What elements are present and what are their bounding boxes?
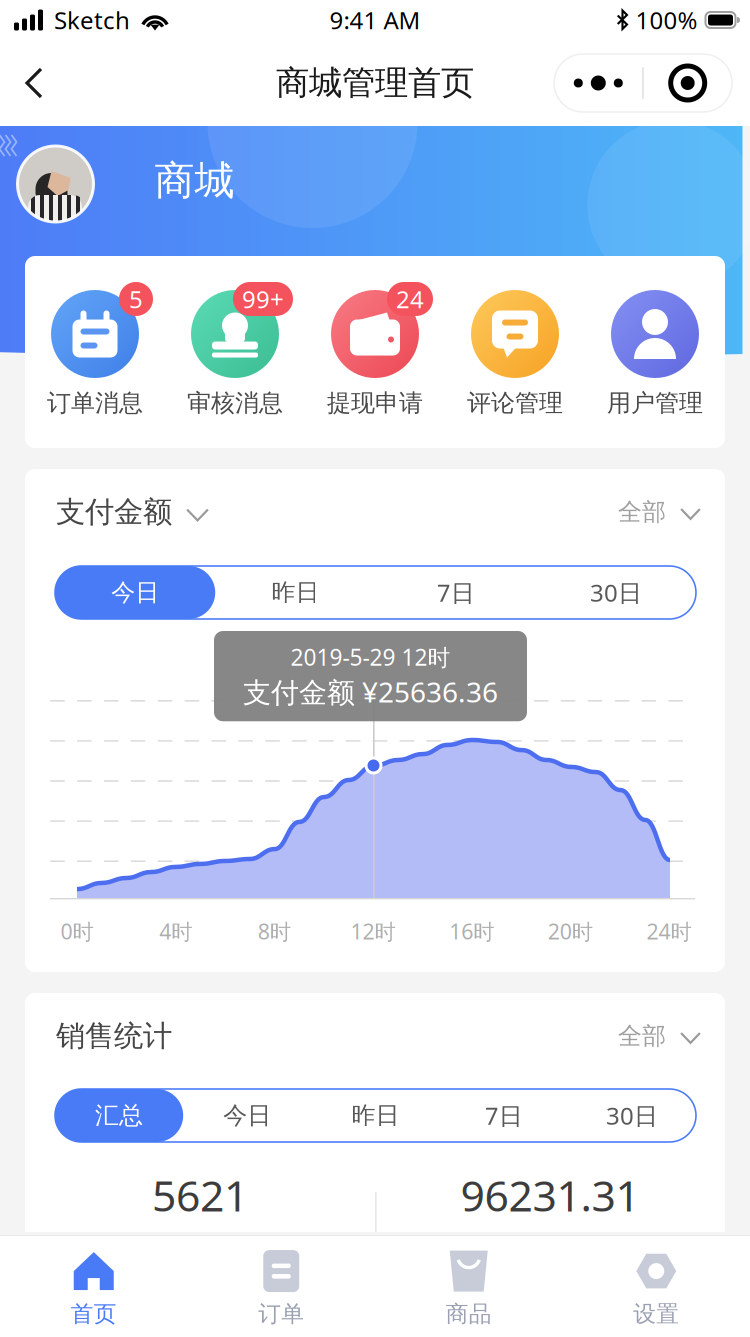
staticText: 20时 (548, 917, 593, 945)
button[interactable]: 用户管理 (585, 290, 725, 417)
button[interactable]: 首页 (0, 1250, 187, 1328)
staticText: 支付金额 (56, 494, 172, 530)
button[interactable]: 今日 (183, 1089, 311, 1142)
button[interactable]: 30日 (568, 1089, 696, 1142)
button[interactable]: 昨日 (311, 1089, 440, 1142)
staticText: 评论管理 (467, 388, 563, 418)
staticText: 30日 (606, 1100, 658, 1131)
button[interactable]: 胶囊菜单 (644, 56, 732, 110)
button[interactable]: 昨日 (215, 566, 375, 619)
staticText: 昨日 (271, 578, 319, 607)
staticText: 商城管理首页 (276, 62, 474, 103)
button[interactable]: 99+ (165, 290, 305, 417)
staticText: 商品 (446, 1300, 492, 1328)
staticText: 全部 (618, 497, 666, 527)
staticText: 用户管理 (607, 388, 703, 418)
button[interactable]: 7日 (375, 566, 536, 619)
staticText: 8时 (258, 917, 291, 945)
staticText: 100% (635, 4, 697, 36)
button[interactable]: 24 (305, 290, 445, 417)
staticText: 24 (396, 283, 424, 315)
staticText: 30日 (590, 577, 642, 608)
button[interactable]: 7日 (440, 1089, 568, 1142)
staticText: 9:41 AM (329, 4, 420, 36)
staticText: 汇总 (95, 1101, 143, 1130)
staticText: 2019-5-29 12时 (290, 642, 450, 672)
staticText: 支付金额 ¥25636.36 (243, 673, 498, 710)
staticText: 5621 (152, 1167, 248, 1223)
staticText: 今日 (111, 578, 159, 607)
staticText: 设置 (633, 1300, 679, 1328)
staticText: 96231.31 (460, 1167, 639, 1223)
button[interactable]: 设置 (562, 1250, 750, 1328)
button[interactable]: 汇总 (55, 1089, 183, 1142)
staticText: 24时 (646, 917, 691, 945)
staticText: 12时 (350, 917, 395, 945)
staticText: 5 (129, 283, 143, 315)
button[interactable]: 更多 (554, 56, 642, 110)
staticText: 订单消息 (47, 388, 143, 418)
button[interactable]: 30日 (536, 566, 696, 619)
staticText: 7日 (485, 1100, 523, 1131)
button[interactable]: 5 (25, 290, 165, 417)
staticText: 99+ (242, 283, 284, 315)
button[interactable]: 订单 (187, 1250, 375, 1328)
staticText: Sketch (54, 4, 130, 36)
button[interactable]: 评论管理 (445, 290, 585, 417)
button[interactable]: 商品 (375, 1250, 562, 1328)
button[interactable]: 返回 (0, 49, 68, 117)
staticText: 商城 (154, 156, 234, 205)
staticText: 审核消息 (187, 388, 283, 418)
staticText: 全部 (618, 1021, 666, 1051)
button[interactable]: 今日 (55, 566, 215, 619)
staticText: 0时 (60, 917, 93, 945)
staticText: 提现申请 (327, 388, 423, 418)
staticText: 7日 (437, 577, 475, 608)
staticText: 昨日 (351, 1101, 399, 1130)
staticText: 销售统计 (56, 1018, 172, 1054)
staticText: 首页 (71, 1300, 117, 1328)
staticText: 4时 (159, 917, 192, 945)
staticText: 今日 (223, 1101, 271, 1130)
staticText: 16时 (449, 917, 494, 945)
staticText: 订单 (258, 1300, 304, 1328)
